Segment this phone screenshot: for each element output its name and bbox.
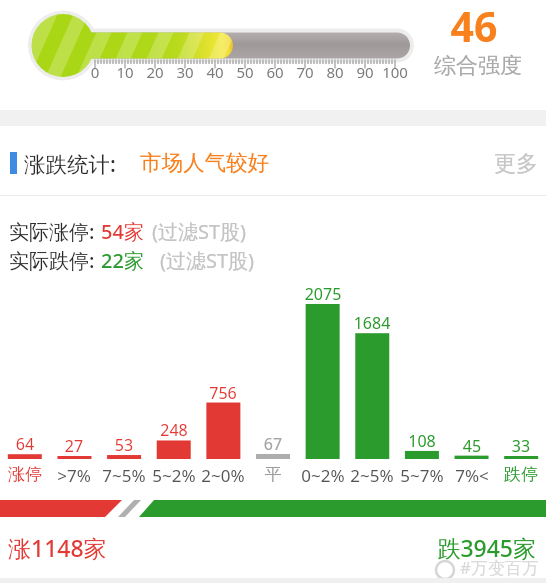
staticText: 100 xyxy=(375,62,415,82)
staticText: 756 xyxy=(193,382,253,404)
staticText: (过滤ST股) xyxy=(152,218,247,245)
button[interactable]: 0~2% xyxy=(293,464,353,487)
staticText: 54家 xyxy=(101,218,144,245)
staticText: 53 xyxy=(94,434,154,456)
staticText: 64 xyxy=(0,433,55,455)
staticText: #万变百万 xyxy=(460,556,539,579)
staticText: 涨1148家 xyxy=(8,532,107,563)
staticText: 45 xyxy=(442,435,502,457)
button[interactable]: 2~5% xyxy=(342,464,402,487)
button[interactable]: 7%< xyxy=(442,464,502,487)
button[interactable]: >7% xyxy=(44,464,104,487)
staticText: 90 xyxy=(345,62,385,82)
staticText: 实际涨停: xyxy=(9,218,95,245)
button[interactable]: 5~2% xyxy=(144,464,204,487)
staticText: (过滤ST股) xyxy=(160,247,255,274)
staticText: 20 xyxy=(135,62,175,82)
staticText: 跌3945家 xyxy=(336,532,536,563)
button[interactable]: 5~7% xyxy=(392,464,452,487)
button[interactable]: 涨停 xyxy=(0,464,55,485)
button[interactable]: 2~0% xyxy=(193,464,253,487)
staticText: 40 xyxy=(195,62,235,82)
staticText: 10 xyxy=(105,62,145,82)
staticText: 27 xyxy=(44,435,104,457)
staticText: 248 xyxy=(144,419,204,441)
staticText: 70 xyxy=(285,62,325,82)
staticText: 综合强度 xyxy=(422,52,534,80)
staticText: 30 xyxy=(165,62,205,82)
staticText: 2075 xyxy=(293,283,353,305)
staticText: 80 xyxy=(315,62,355,82)
staticText: 1684 xyxy=(342,312,402,334)
staticText: 46 xyxy=(434,0,514,54)
staticText: 22家 xyxy=(101,247,144,274)
button[interactable]: 市场人气较好 xyxy=(140,149,269,176)
button[interactable]: 涨跌统计: xyxy=(24,149,116,178)
staticText: 33 xyxy=(491,435,546,457)
staticText: 108 xyxy=(392,430,452,452)
staticText: 0 xyxy=(75,62,115,82)
button[interactable]: 跌停 xyxy=(491,464,546,485)
staticText: 60 xyxy=(255,62,295,82)
button[interactable]: 平 xyxy=(243,464,303,485)
staticText: 实际跌停: xyxy=(9,247,95,274)
staticText: 67 xyxy=(243,433,303,455)
button[interactable]: 7~5% xyxy=(94,464,154,487)
button[interactable]: 更多 xyxy=(420,150,538,178)
staticText: 50 xyxy=(225,62,265,82)
